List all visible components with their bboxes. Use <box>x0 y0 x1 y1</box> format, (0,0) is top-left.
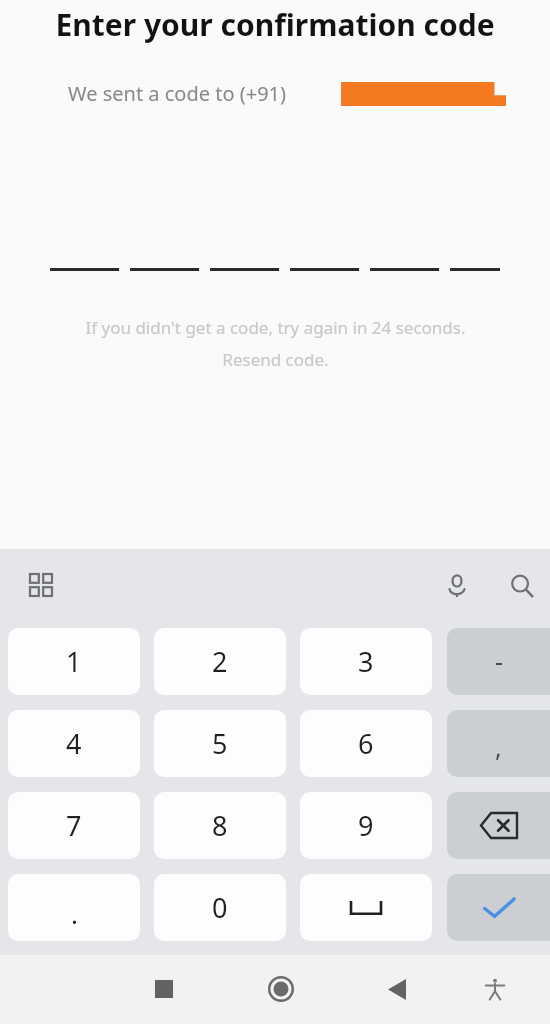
staticText: 5 <box>212 725 228 762</box>
button[interactable]: Enter <box>447 874 550 941</box>
staticText: 4 <box>66 725 82 762</box>
button[interactable]: 2 <box>154 628 286 695</box>
button[interactable]: 0 <box>154 874 286 941</box>
button[interactable]: 6 <box>300 710 432 777</box>
button[interactable]: Backspace <box>447 792 550 859</box>
button[interactable]: Search <box>502 566 542 606</box>
button[interactable]: Space <box>300 874 432 941</box>
staticText: 8 <box>212 807 228 844</box>
staticText: If you didn't get a code, try again in 2… <box>85 316 466 339</box>
staticText: . <box>71 896 78 931</box>
button[interactable]: 1 <box>8 628 140 695</box>
button[interactable]: Recent apps <box>140 965 188 1013</box>
button[interactable]: Resend code. <box>222 348 329 371</box>
button[interactable]: 3 <box>300 628 432 695</box>
button[interactable]: 5 <box>154 710 286 777</box>
staticText: 9 <box>358 807 374 844</box>
staticText: We sent a code to (+91) <box>68 80 287 107</box>
button[interactable]: Voice input <box>437 566 477 606</box>
staticText: 1 <box>66 643 82 680</box>
button[interactable]: 8 <box>154 792 286 859</box>
button[interactable]: 9 <box>300 792 432 859</box>
staticText: , <box>495 730 502 764</box>
staticText: Enter your confirmation code <box>0 4 550 45</box>
staticText: 0 <box>212 889 228 926</box>
button[interactable]: Back <box>373 965 421 1013</box>
button[interactable]: Home <box>257 965 305 1013</box>
staticText: 7 <box>66 807 82 844</box>
button[interactable]: 7 <box>8 792 140 859</box>
button[interactable]: Keyboard modes <box>22 566 60 604</box>
staticText: 6 <box>358 725 374 762</box>
button[interactable]: . <box>8 874 140 941</box>
staticText: 3 <box>358 643 374 680</box>
button[interactable]: Accessibility <box>471 965 519 1013</box>
button[interactable]: , <box>447 710 550 777</box>
button[interactable]: - <box>447 628 550 695</box>
staticText: - <box>495 644 504 678</box>
button[interactable]: 4 <box>8 710 140 777</box>
staticText: 2 <box>212 643 228 680</box>
